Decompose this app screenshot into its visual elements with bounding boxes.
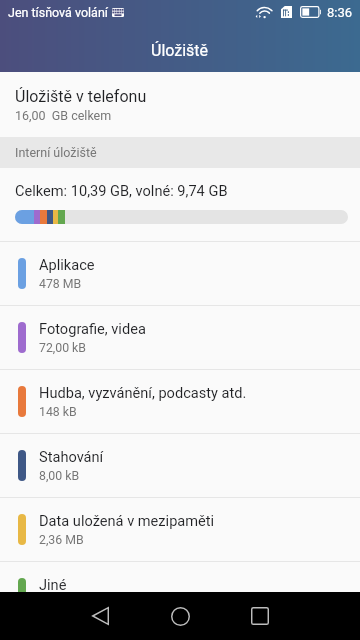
staticText: Úložiště [151,41,209,60]
button[interactable]: Jiné [0,561,360,592]
button[interactable]: Home [148,592,212,640]
staticText: Hudba, vyzvánění, podcasty atd. [39,384,247,401]
button[interactable]: Hudba, vyzvánění, podcasty atd. [0,369,360,433]
button[interactable]: Recent apps [228,592,292,640]
staticText: 8,00 kB [39,469,80,483]
staticText: Interní úložiště [15,145,97,160]
staticText: 2,36 MB [39,533,84,547]
staticText: Aplikace [39,256,95,273]
button[interactable]: Data uložená v mezipaměti [0,497,360,561]
staticText: 16,00 GB celkem [15,108,112,123]
staticText: Data uložená v mezipaměti [39,512,215,529]
staticText: 8:36 [327,5,353,20]
button[interactable]: Fotografie, videa [0,305,360,369]
staticText: Fotografie, videa [39,320,146,337]
button[interactable]: Aplikace [0,241,360,305]
staticText: Stahování [39,448,104,465]
staticText: Celkem: 10,39 GB, volné: 9,74 GB [15,182,228,199]
button[interactable]: Úložiště v telefonu [0,72,360,137]
staticText: 148 kB [39,405,77,419]
button[interactable]: Stahování [0,433,360,497]
staticText: Jen tísňová volání [8,5,108,20]
staticText: 478 MB [39,277,82,291]
staticText: Úložiště v telefonu [15,87,147,106]
staticText: 72,00 kB [39,341,87,355]
button[interactable]: Back [68,592,132,640]
staticText: Jiné [39,576,67,592]
